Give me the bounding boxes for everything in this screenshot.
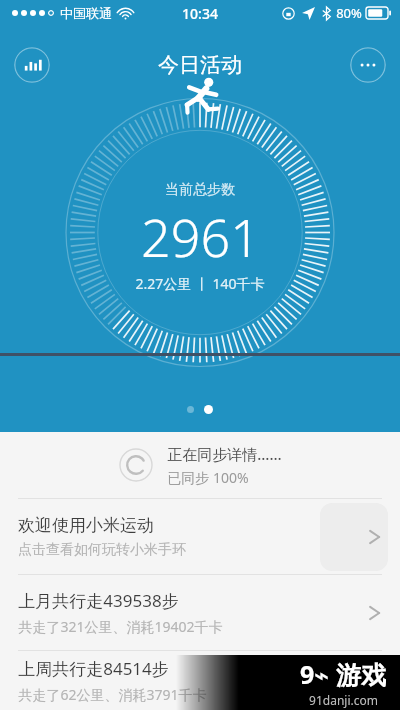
staticText: 2.27公里 丨 140千卡: [135, 274, 265, 293]
staticText: 今日活动: [158, 52, 242, 78]
button[interactable]: 上周共行走84514步: [0, 651, 400, 710]
button[interactable]: 欢迎使用小米运动: [0, 499, 400, 574]
staticText: 9⌁ 游戏: [300, 657, 386, 691]
staticText: 91danji.com: [309, 692, 378, 708]
staticText: 共走了62公里、消耗3791千卡: [18, 685, 207, 704]
staticText: 已同步 100%: [167, 468, 249, 487]
staticText: 当前总步数: [165, 181, 235, 199]
staticText: 中国联通: [60, 5, 112, 21]
staticText: 点击查看如何玩转小米手环: [18, 541, 186, 559]
button[interactable]: 正在同步详情……: [0, 432, 400, 498]
button[interactable]: 统计: [14, 47, 50, 83]
staticText: 欢迎使用小米运动: [18, 515, 154, 536]
button[interactable]: 上月共行走439538步: [0, 575, 400, 650]
staticText: 共走了321公里、消耗19402千卡: [18, 617, 223, 636]
staticText: 上月共行走439538步: [18, 589, 179, 612]
staticText: 2961: [141, 201, 260, 272]
button[interactable]: 更多: [350, 47, 386, 83]
staticText: 正在同步详情……: [167, 444, 282, 464]
staticText: 上周共行走84514步: [18, 657, 169, 680]
staticText: 10:34: [182, 4, 218, 23]
staticText: 80%: [336, 4, 362, 22]
